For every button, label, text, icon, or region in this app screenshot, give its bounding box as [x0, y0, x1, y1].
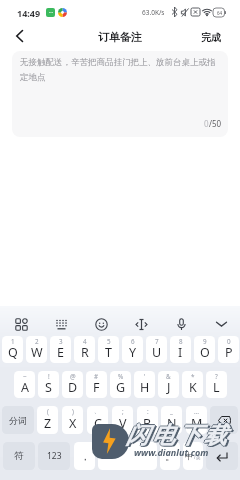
button[interactable]: ;	[112, 406, 133, 434]
staticText: J	[167, 379, 171, 396]
button[interactable]: …	[186, 406, 207, 434]
staticText: 闪电下载	[126, 422, 230, 451]
staticText: 123	[47, 450, 62, 462]
staticText: …	[194, 407, 199, 416]
button[interactable]	[161, 310, 201, 338]
button[interactable]	[8, 25, 30, 47]
staticText: 闪电下载	[123, 421, 227, 450]
button[interactable]: 0	[218, 336, 239, 363]
staticText: ?	[215, 372, 218, 381]
button[interactable]: _	[161, 406, 182, 434]
staticText: M	[191, 415, 203, 432]
button[interactable]	[210, 406, 238, 434]
button[interactable]	[98, 442, 157, 470]
staticText: E	[57, 344, 64, 361]
staticText: 闪电下载	[124, 421, 228, 450]
staticText: '	[144, 372, 146, 381]
button[interactable]: :	[137, 406, 158, 434]
staticText: L	[213, 379, 220, 396]
button[interactable]	[201, 310, 240, 338]
staticText: /英	[194, 454, 201, 460]
staticText: H	[140, 379, 150, 396]
button[interactable]: ，	[74, 442, 95, 470]
staticText: *	[191, 372, 195, 381]
staticText: 14:49	[17, 7, 41, 19]
staticText: ~	[23, 372, 27, 381]
button[interactable]: 5	[98, 336, 119, 363]
button[interactable]: 。	[160, 442, 180, 470]
staticText: %	[118, 372, 124, 381]
staticText: T	[105, 344, 112, 361]
button[interactable]: @	[62, 371, 83, 398]
button[interactable]: ~	[14, 371, 35, 398]
staticText: Z	[44, 415, 52, 432]
staticText: 闪电下载	[125, 421, 229, 450]
staticText: 。	[165, 450, 175, 463]
staticText: www.dianlut.com	[134, 446, 209, 458]
staticText: 无接触配送，辛苦把商品挂门把上、放前台桌上或指定地点	[20, 57, 220, 83]
staticText: 中	[185, 451, 194, 462]
button[interactable]: *	[182, 371, 203, 398]
button[interactable]	[121, 310, 161, 338]
staticText: /50	[209, 118, 222, 129]
staticText: 符	[14, 450, 24, 462]
button[interactable]: &	[158, 371, 179, 398]
button[interactable]	[81, 310, 121, 338]
button[interactable]	[41, 310, 81, 338]
staticText: )	[72, 407, 74, 416]
staticText: 5	[107, 337, 111, 346]
button[interactable]: 无接触配送，辛苦把商品挂门把上、放前台桌上或指定地点	[12, 51, 228, 137]
staticText: #	[94, 372, 99, 381]
button[interactable]: 123	[38, 442, 70, 470]
button[interactable]: 6	[122, 336, 143, 363]
staticText: 6	[131, 337, 135, 346]
button[interactable]: 2	[26, 336, 47, 363]
staticText: Q	[8, 344, 18, 361]
staticText: 8	[179, 337, 183, 346]
button[interactable]: #	[86, 371, 107, 398]
button[interactable]: !	[38, 371, 59, 398]
button[interactable]	[206, 442, 238, 470]
button[interactable]: 1	[2, 336, 23, 363]
staticText: 订单备注	[98, 30, 142, 44]
staticText: 64	[217, 10, 223, 16]
button[interactable]: 分词	[2, 406, 34, 434]
staticText: 7	[155, 337, 159, 346]
staticText: N	[167, 415, 177, 432]
staticText: 0	[204, 118, 209, 129]
staticText: 闪电下载	[124, 422, 228, 451]
button[interactable]: )	[62, 406, 83, 434]
button[interactable]: 9	[194, 336, 215, 363]
staticText: B	[143, 415, 152, 432]
button[interactable]: (	[37, 406, 58, 434]
button[interactable]: 符	[3, 442, 35, 470]
button[interactable]: %	[110, 371, 131, 398]
button[interactable]: 完成	[201, 31, 221, 44]
staticText: P	[225, 344, 233, 361]
staticText: 分词	[9, 415, 27, 426]
staticText: 、	[94, 407, 101, 415]
staticText: (	[47, 407, 49, 416]
button[interactable]: '	[134, 371, 155, 398]
staticText: X	[69, 415, 77, 432]
staticText: _	[170, 407, 173, 416]
button[interactable]: 中	[183, 442, 203, 470]
button[interactable]: 4	[74, 336, 95, 363]
button[interactable]: 3	[50, 336, 71, 363]
staticText: 闪电下载	[124, 420, 228, 449]
staticText: Y	[129, 344, 137, 361]
staticText: D	[68, 379, 78, 396]
staticText: 0	[227, 337, 231, 346]
staticText: O	[200, 344, 210, 361]
button[interactable]: 、	[87, 406, 108, 434]
button[interactable]	[1, 310, 41, 338]
button[interactable]: 7	[146, 336, 167, 363]
staticText: …	[49, 8, 53, 15]
staticText: :	[147, 407, 149, 416]
staticText: !	[48, 372, 50, 381]
staticText: ;	[122, 407, 124, 416]
staticText: @	[70, 372, 76, 381]
button[interactable]: 8	[170, 336, 191, 363]
staticText: R	[81, 344, 89, 361]
button[interactable]: ?	[206, 371, 227, 398]
